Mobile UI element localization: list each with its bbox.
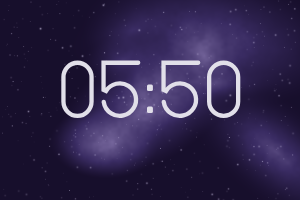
button[interactable]: Clock showing 05:50 [0,0,300,200]
